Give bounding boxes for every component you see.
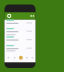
button[interactable] [5, 35, 35, 43]
button[interactable]: Tab 2 [12, 54, 18, 61]
button[interactable]: Search [29, 13, 34, 18]
button[interactable]: More options [31, 13, 36, 18]
button[interactable]: Account [7, 13, 12, 18]
button[interactable]: Tab 4 [24, 54, 30, 61]
button[interactable] [5, 18, 35, 26]
button[interactable]: Tab 5 [30, 54, 36, 61]
button[interactable] [5, 26, 35, 34]
button[interactable]: Tab 1 [6, 54, 12, 61]
button[interactable] [5, 43, 35, 51]
button[interactable]: Tab 3 [18, 54, 24, 61]
